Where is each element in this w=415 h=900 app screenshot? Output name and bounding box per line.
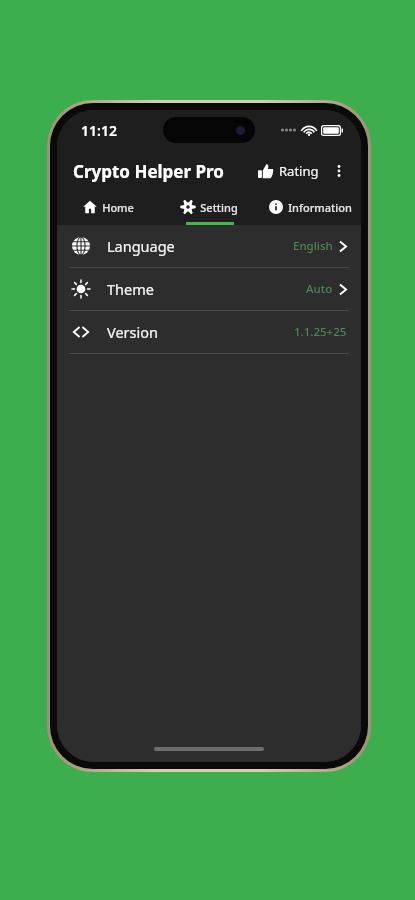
staticText: English xyxy=(293,238,333,254)
staticText: Theme xyxy=(107,279,154,299)
button[interactable]: Setting xyxy=(159,192,260,222)
staticText: Version xyxy=(107,322,158,342)
button[interactable]: Information xyxy=(260,192,361,222)
button[interactable]: Rating xyxy=(252,156,325,186)
button[interactable]: Language xyxy=(57,225,361,267)
staticText: 1.1.25+25 xyxy=(294,324,347,340)
staticText: Auto xyxy=(306,281,333,297)
staticText: Information xyxy=(288,200,352,215)
button[interactable]: Version xyxy=(57,311,361,353)
staticText: Language xyxy=(107,236,175,256)
staticText: Crypto Helper Pro xyxy=(73,160,224,183)
button[interactable]: More options xyxy=(325,157,353,185)
staticText: Setting xyxy=(200,200,238,215)
staticText: Home xyxy=(102,200,134,215)
button[interactable]: Theme xyxy=(57,268,361,310)
button[interactable]: Home xyxy=(57,192,159,222)
staticText: 11:12 xyxy=(81,121,117,140)
staticText: Rating xyxy=(279,162,319,180)
